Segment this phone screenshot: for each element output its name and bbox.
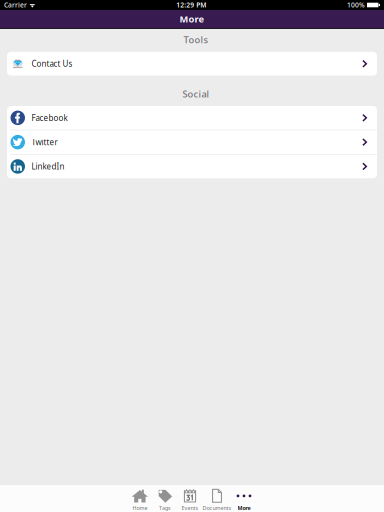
- button[interactable]: Twitter: [7, 130, 377, 154]
- staticText: Tags: [159, 504, 171, 511]
- button[interactable]: Tags: [152, 489, 177, 511]
- staticText: Social: [182, 88, 209, 100]
- staticText: 100%: [347, 1, 365, 9]
- staticText: More: [237, 504, 250, 511]
- staticText: Facebook: [31, 112, 67, 123]
- staticText: Events: [181, 504, 198, 511]
- staticText: Twitter: [31, 137, 57, 147]
- button[interactable]: LinkedIn: [7, 155, 377, 178]
- button[interactable]: More: [231, 489, 256, 511]
- staticText: Documents: [202, 504, 231, 511]
- staticText: Carrier: [4, 1, 27, 9]
- staticText: Contact Us: [31, 58, 72, 69]
- staticText: Tools: [183, 33, 208, 46]
- button[interactable]: Documents: [202, 489, 231, 511]
- button[interactable]: Contact Us: [7, 52, 377, 76]
- staticText: LinkedIn: [31, 161, 64, 172]
- button[interactable]: Facebook: [7, 106, 377, 130]
- staticText: Home: [132, 504, 147, 511]
- staticText: 12:29 PM: [176, 1, 206, 9]
- button[interactable]: Home: [127, 489, 152, 511]
- button[interactable]: Events: [177, 489, 202, 511]
- staticText: More: [179, 13, 204, 25]
